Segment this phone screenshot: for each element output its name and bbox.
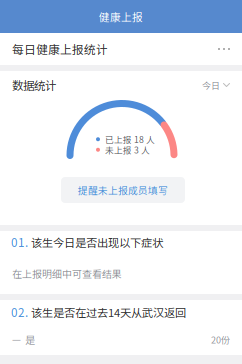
button[interactable]: 02.: [0, 300, 242, 355]
staticText: 健康上报: [99, 9, 143, 24]
button[interactable]: 今日: [202, 78, 230, 91]
staticText: — 是: [12, 332, 35, 347]
button[interactable]: 提醒未上报成员填写: [61, 177, 185, 203]
staticText: 提醒未上报成员填写: [78, 183, 168, 197]
staticText: 20份: [211, 333, 230, 346]
button[interactable]: 01.: [0, 231, 242, 294]
staticText: 01.: [11, 233, 28, 250]
staticText: 数据统计: [12, 77, 56, 93]
staticText: 该生今日是否出现以下症状: [31, 234, 163, 250]
staticText: 该生是否在过去14天从武汉返回: [31, 304, 186, 320]
staticText: 在上报明细中可查看结果: [12, 266, 122, 281]
staticText: 今日: [202, 78, 220, 91]
staticText: 每日健康上报统计: [12, 40, 108, 57]
button[interactable]: 每日健康上报统计: [0, 33, 242, 65]
staticText: 已上报 18 人: [105, 133, 155, 145]
staticText: 02.: [11, 303, 28, 320]
staticText: 未上报 3 人: [105, 143, 150, 156]
